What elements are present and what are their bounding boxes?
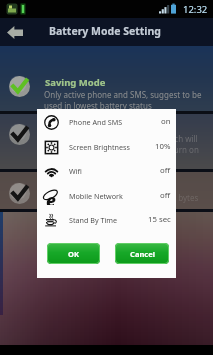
button[interactable]: [0, 114, 213, 170]
staticText: Only active phone and SMS, suggest to be: [44, 89, 202, 100]
button[interactable]: Screen Brightness: [37, 134, 176, 159]
staticText: Battery Mode Setting: [49, 24, 161, 38]
staticText: Saving Mode: [45, 76, 106, 89]
staticText: used in lowest battery status: [44, 100, 152, 111]
button[interactable]: Cancel: [115, 243, 169, 264]
staticText: Normal Mode: [45, 120, 110, 133]
button[interactable]: OK: [47, 243, 100, 264]
button[interactable]: [0, 172, 213, 210]
button[interactable]: Wifi: [37, 158, 176, 183]
button[interactable]: Select mode: [9, 124, 30, 145]
staticText: Phone And SMS: [69, 117, 123, 127]
staticText: Wifi: [69, 166, 82, 176]
staticText: Cancel: [130, 249, 155, 259]
staticText: OK: [68, 249, 79, 259]
staticText: All functions are on, consume most bytes: [44, 192, 199, 203]
staticText: 15 sec: [148, 214, 171, 225]
staticText: 10%: [155, 141, 171, 152]
button[interactable]: Back: [1, 20, 29, 44]
staticText: on: [161, 116, 171, 127]
staticText: Keep phone, SMS and network which will: [44, 133, 198, 144]
staticText: Mobile Network: [69, 191, 123, 201]
staticText: e: [46, 189, 56, 205]
staticText: Stand By Time: [69, 215, 118, 225]
staticText: off: [160, 190, 171, 201]
staticText: consume more power, suggest to turn on: [44, 144, 199, 155]
staticText: Screen Brightness: [69, 142, 130, 152]
button[interactable]: Phone And SMS: [37, 109, 176, 134]
staticText: off: [160, 165, 171, 176]
button[interactable]: e: [37, 183, 176, 208]
button[interactable]: Stand By Time: [37, 207, 176, 232]
button[interactable]: Select mode: [9, 183, 30, 204]
staticText: 12:32: [183, 3, 208, 16]
button[interactable]: Select mode: [9, 76, 30, 97]
staticText: Performance Mode: [45, 178, 136, 191]
button[interactable]: [0, 46, 213, 112]
